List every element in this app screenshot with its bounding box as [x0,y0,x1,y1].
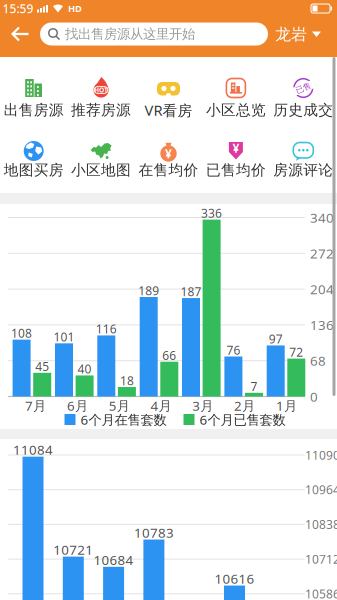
button[interactable]: Back [9,27,31,41]
button[interactable]: HOT [68,64,135,126]
staticText: 11084 [13,441,53,458]
staticText: 小区地图 [71,161,131,179]
staticText: ¥ [165,145,172,161]
staticText: 10684 [94,551,134,569]
staticText: 找出售房源从这里开始 [65,26,195,42]
staticText: 10712 [305,551,337,567]
staticText: 2月 [234,397,255,414]
staticText: HOT [94,86,108,94]
staticText: 0 [310,388,318,405]
button[interactable]: 找出售房源从这里开始 [40,22,268,45]
staticText: 已售均价 [206,161,266,179]
staticText: 6个月在售套数 [80,411,166,428]
staticText: 45 [35,358,49,374]
staticText: 68 [310,352,326,369]
staticText: 15:59 [2,0,33,16]
button[interactable]: ¥ [202,126,269,188]
staticText: 5月 [109,397,130,414]
staticText: 房源评论 [273,161,333,179]
staticText: 340 [310,209,334,226]
button[interactable]: VR看房 [135,64,202,126]
staticText: 地图买房 [4,161,64,179]
button[interactable]: 小区地图 [68,126,135,188]
staticText: 已售 [295,83,311,93]
staticText: 6个月已售套数 [199,411,285,428]
staticText: 推荐房源 [71,101,131,119]
staticText: 40 [78,361,92,377]
staticText: 76 [226,342,240,358]
staticText: 4月 [150,397,171,414]
staticText: 6月 [67,397,88,414]
staticText: 204 [310,280,334,298]
staticText: 187 [180,284,201,299]
staticText: HD [68,2,82,15]
staticText: 336 [201,205,222,221]
staticText: 3月 [192,397,213,414]
staticText: 116 [96,321,117,337]
staticText: 10616 [214,570,254,587]
button[interactable]: 地图买房 [0,126,67,188]
staticText: 龙岩 [275,25,307,44]
button[interactable]: 房源评论 [270,126,337,188]
staticText: 272 [310,244,334,262]
staticText: 7 [250,378,257,394]
staticText: 72 [289,344,303,360]
staticText: 10721 [53,541,93,558]
staticText: 1月 [276,397,297,414]
staticText: VR看房 [144,100,192,120]
button[interactable]: 已售 [270,64,337,126]
staticText: 101 [53,329,74,345]
staticText: 136 [310,316,334,334]
staticText: 189 [138,282,159,298]
staticText: 66 [162,347,176,363]
staticText: 10964 [305,482,337,498]
staticText: 7月 [25,397,46,414]
button[interactable]: ¥ [135,126,202,188]
staticText: 10783 [134,524,174,541]
staticText: 11090 [305,447,337,463]
staticText: 18 [120,373,134,388]
staticText: ¥ [232,140,239,156]
staticText: 在售均价 [138,161,198,179]
staticText: 10586 [305,586,337,600]
staticText: 历史成交 [273,101,333,119]
button[interactable]: 龙岩 [275,25,321,44]
staticText: 97 [269,331,283,347]
staticText: 小区总览 [206,101,266,119]
button[interactable]: 小区总览 [202,64,269,126]
staticText: 108 [11,325,32,341]
staticText: 10838 [305,516,337,532]
staticText: 出售房源 [4,101,64,119]
button[interactable]: 出售房源 [0,64,67,126]
